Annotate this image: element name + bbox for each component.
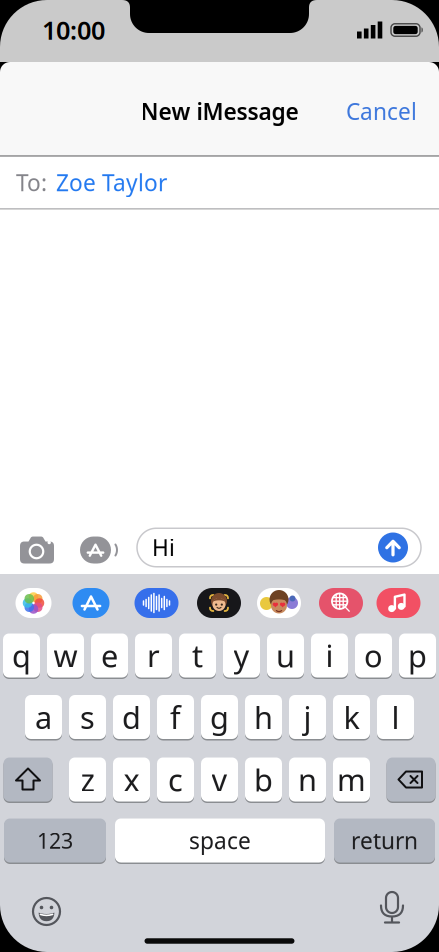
button[interactable]: App Store xyxy=(72,588,109,618)
button[interactable]: space xyxy=(115,817,325,863)
button[interactable]: m xyxy=(333,756,370,802)
staticText: r xyxy=(147,635,160,676)
button[interactable]: Photos xyxy=(15,588,51,618)
staticText: o xyxy=(364,635,383,676)
button[interactable]: t xyxy=(179,632,216,678)
staticText: l xyxy=(391,697,399,737)
button[interactable]: Delete xyxy=(386,756,435,802)
staticText: n xyxy=(298,759,317,800)
button[interactable]: j xyxy=(289,694,326,740)
button[interactable]: Dictation xyxy=(376,891,408,931)
staticText: To: xyxy=(16,167,47,197)
staticText: s xyxy=(80,697,95,737)
staticText: q xyxy=(12,635,31,676)
button[interactable]: u xyxy=(267,632,304,678)
staticText: Hi xyxy=(152,532,175,562)
button[interactable]: w xyxy=(47,632,84,678)
button[interactable]: Music xyxy=(376,588,420,618)
staticText: 10:00 xyxy=(42,13,105,47)
staticText: x xyxy=(123,759,139,800)
button[interactable]: Shift xyxy=(3,756,52,802)
button[interactable]: Memoji xyxy=(197,588,241,618)
staticText: New iMessage xyxy=(140,96,298,126)
staticText: g xyxy=(210,697,229,737)
staticText: p xyxy=(408,635,427,676)
button[interactable]: Memoji Stickers xyxy=(257,588,301,618)
staticText: k xyxy=(343,697,359,737)
staticText: j xyxy=(303,697,311,737)
button[interactable]: 123 xyxy=(4,817,106,863)
button[interactable]: s xyxy=(69,694,106,740)
button[interactable]: Camera xyxy=(20,536,54,563)
staticText: c xyxy=(168,759,183,800)
button[interactable]: Audio xyxy=(134,588,178,618)
staticText: space xyxy=(189,825,251,855)
staticText: t xyxy=(192,635,203,676)
staticText: w xyxy=(53,635,77,676)
staticText: f xyxy=(170,697,181,737)
staticText: e xyxy=(101,635,118,676)
button[interactable]: v xyxy=(201,756,238,802)
staticText: Zoe Taylor xyxy=(56,167,167,197)
button[interactable]: n xyxy=(289,756,326,802)
staticText: z xyxy=(80,759,94,800)
staticText: v xyxy=(211,759,227,800)
staticText: i xyxy=(325,635,333,676)
button[interactable]: d xyxy=(113,694,150,740)
staticText: u xyxy=(276,635,295,676)
button[interactable]: Emoji xyxy=(33,898,60,925)
button[interactable]: q xyxy=(3,632,40,678)
button[interactable]: f xyxy=(157,694,194,740)
button[interactable]: a xyxy=(25,694,62,740)
button[interactable]: e xyxy=(91,632,128,678)
button[interactable]: Images xyxy=(319,588,363,618)
button[interactable]: Cancel xyxy=(346,96,417,126)
button[interactable]: g xyxy=(201,694,238,740)
staticText: h xyxy=(254,697,273,737)
staticText: m xyxy=(337,759,366,800)
button[interactable]: r xyxy=(135,632,172,678)
button[interactable]: k xyxy=(333,694,370,740)
button[interactable]: To: xyxy=(0,157,439,208)
button[interactable]: i xyxy=(311,632,348,678)
button[interactable]: Apps xyxy=(80,536,118,563)
staticText: 123 xyxy=(37,826,73,855)
staticText: return xyxy=(351,825,418,855)
button[interactable]: x xyxy=(113,756,150,802)
button[interactable]: p xyxy=(399,632,436,678)
button[interactable]: l xyxy=(377,694,414,740)
button[interactable]: b xyxy=(245,756,282,802)
button[interactable]: h xyxy=(245,694,282,740)
staticText: b xyxy=(254,759,273,800)
button[interactable]: y xyxy=(223,632,260,678)
button[interactable]: c xyxy=(157,756,194,802)
staticText: y xyxy=(233,635,249,676)
button[interactable]: Hi xyxy=(137,528,421,567)
button[interactable]: return xyxy=(334,817,435,863)
staticText: Cancel xyxy=(346,96,417,126)
staticText: a xyxy=(35,697,52,737)
button[interactable]: Send xyxy=(378,532,408,562)
staticText: d xyxy=(122,697,141,737)
button[interactable]: o xyxy=(355,632,392,678)
button[interactable]: z xyxy=(69,756,106,802)
